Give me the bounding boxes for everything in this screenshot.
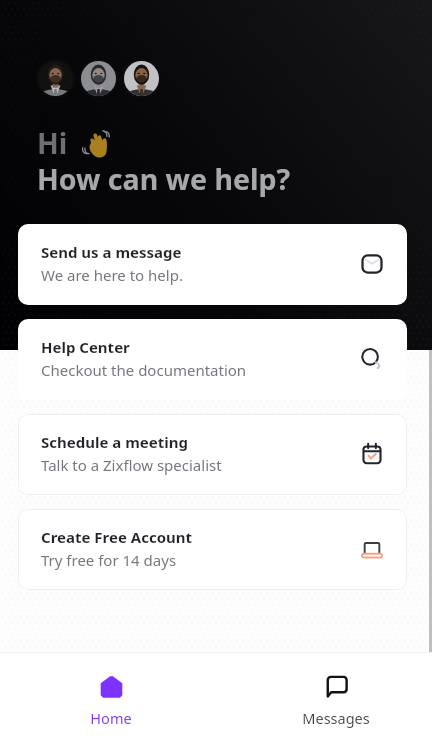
other: Search [360,347,384,371]
button[interactable]: Messages [276,675,396,728]
staticText: Home [51,708,171,728]
staticText: Messages [276,708,396,728]
button[interactable]: Schedule a meeting [18,414,407,495]
button[interactable]: Send us a message [18,224,407,305]
staticText: Try free for 14 days [41,550,177,570]
button[interactable]: Create Free Account [18,509,407,590]
staticText: How can we help? [37,160,291,199]
staticText: We are here to help. [41,265,183,285]
staticText: Schedule a meeting [41,432,188,452]
staticText: Hi [37,124,68,163]
button[interactable]: Help Center [18,319,407,400]
other: Create free account [360,537,384,561]
other: Send message [360,252,384,276]
staticText: Talk to a Zixflow specialist [41,455,222,475]
other: Schedule a meeting [360,442,384,466]
staticText: Create Free Account [41,527,193,547]
staticText: Send us a message [41,242,182,262]
staticText: Checkout the documentation [41,360,247,380]
staticText: Help Center [41,337,130,357]
button[interactable]: Home [51,675,171,728]
